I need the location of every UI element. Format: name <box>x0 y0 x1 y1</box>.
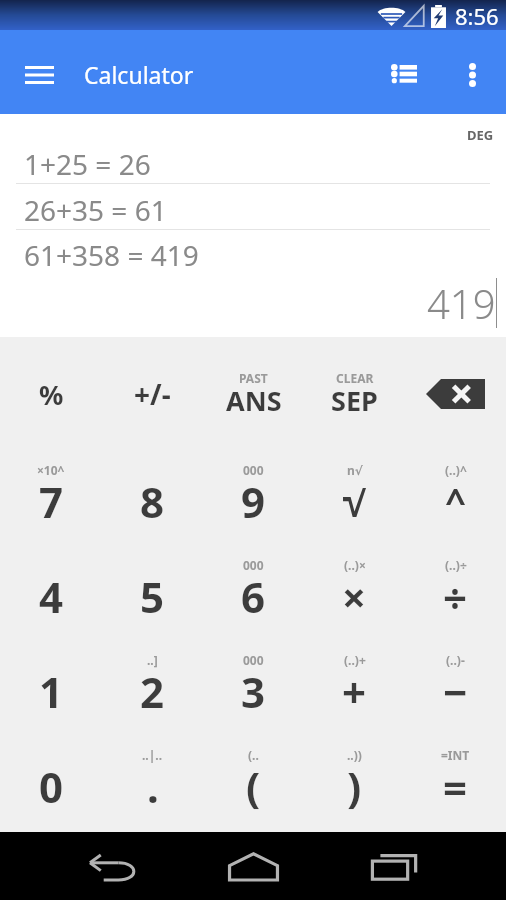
staticText: Calculator <box>84 59 194 90</box>
staticText: 2 <box>140 663 165 720</box>
button[interactable]: CLEAR <box>304 337 405 432</box>
staticText: ..|.. <box>142 747 163 763</box>
staticText: ) <box>347 758 362 815</box>
staticText: DEG <box>467 126 494 144</box>
staticText: 5 <box>140 568 165 625</box>
button[interactable]: ×10^ <box>0 432 102 527</box>
button[interactable]: 000 <box>203 432 304 527</box>
staticText: SEP <box>331 382 378 419</box>
button[interactable]: More options <box>446 49 498 101</box>
staticText: 000 <box>243 557 264 573</box>
staticText: 9 <box>241 473 266 530</box>
button[interactable]: 000 <box>203 622 304 717</box>
button[interactable]: (..)+ <box>304 622 405 717</box>
button[interactable]: Delete <box>405 337 506 432</box>
button[interactable]: Open navigation menu <box>12 49 66 101</box>
staticText: − <box>443 663 468 720</box>
button[interactable]: 0 <box>0 717 102 812</box>
button[interactable]: 26+35 = 61 <box>2 191 504 230</box>
staticText: ..)) <box>347 747 362 763</box>
staticText: 000 <box>243 462 264 478</box>
button[interactable]: ..)) <box>304 717 405 812</box>
staticText: + <box>342 663 367 720</box>
staticText: . <box>147 758 159 815</box>
button[interactable]: ..] <box>102 622 203 717</box>
button[interactable]: +/- <box>102 337 203 432</box>
button[interactable]: Recent apps <box>362 832 426 900</box>
button[interactable]: % <box>0 337 102 432</box>
staticText: (..)^ <box>445 462 467 478</box>
button[interactable]: (.. <box>203 717 304 812</box>
button[interactable]: 000 <box>203 527 304 622</box>
staticText: PAST <box>239 370 268 386</box>
button[interactable]: PAST <box>203 337 304 432</box>
staticText: +/- <box>134 375 171 413</box>
staticText: 6 <box>241 568 266 625</box>
staticText: 26+35 = 61 <box>24 191 167 229</box>
staticText: (..)÷ <box>445 557 467 573</box>
staticText: 1 <box>39 663 64 720</box>
other: Delete <box>426 379 485 409</box>
button[interactable]: (..)- <box>405 622 506 717</box>
button[interactable]: Home <box>221 832 285 900</box>
staticText: ÷ <box>443 568 468 625</box>
staticText: (.. <box>248 747 259 763</box>
staticText: 419 <box>427 276 496 330</box>
staticText: =INT <box>441 747 470 763</box>
staticText: 61+358 = 419 <box>24 236 199 274</box>
button[interactable]: 4 <box>0 527 102 622</box>
staticText: % <box>39 376 64 413</box>
button[interactable]: (..)× <box>304 527 405 622</box>
staticText: 000 <box>243 652 264 668</box>
staticText: 8:56 <box>455 1 499 31</box>
staticText: n√ <box>347 462 363 478</box>
staticText: (..)× <box>344 557 366 573</box>
staticText: ANS <box>226 382 282 419</box>
button[interactable]: (..)^ <box>405 432 506 527</box>
button[interactable]: 1 <box>0 622 102 717</box>
staticText: 8 <box>140 473 165 530</box>
staticText: (..)+ <box>344 652 366 668</box>
button[interactable]: n√ <box>304 432 405 527</box>
button[interactable]: 61+358 = 419 <box>2 236 504 280</box>
button[interactable]: (..)÷ <box>405 527 506 622</box>
staticText: × <box>342 568 367 625</box>
button[interactable]: 5 <box>102 527 203 622</box>
staticText: CLEAR <box>336 370 374 386</box>
staticText: 0 <box>39 758 64 815</box>
staticText: 4 <box>39 568 64 625</box>
button[interactable]: 8 <box>102 432 203 527</box>
staticText: 7 <box>39 473 64 530</box>
staticText: = <box>443 758 468 815</box>
staticText: ..] <box>147 652 158 668</box>
staticText: 1+25 = 26 <box>24 145 151 183</box>
staticText: ( <box>246 758 261 815</box>
button[interactable]: 1+25 = 26 <box>2 145 504 184</box>
button[interactable]: =INT <box>405 717 506 812</box>
staticText: 3 <box>241 663 266 720</box>
button[interactable]: ..|.. <box>102 717 203 812</box>
staticText: (..)- <box>446 652 465 668</box>
button[interactable]: Back <box>81 832 145 900</box>
button[interactable]: Show history <box>378 48 430 100</box>
staticText: ×10^ <box>37 462 65 478</box>
